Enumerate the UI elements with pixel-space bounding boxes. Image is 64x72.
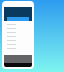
button[interactable] [4,26,32,30]
button[interactable] [4,34,32,38]
button[interactable] [4,30,32,34]
button[interactable] [4,22,32,26]
button[interactable] [4,42,32,46]
button[interactable] [4,38,32,42]
button[interactable] [4,46,32,50]
